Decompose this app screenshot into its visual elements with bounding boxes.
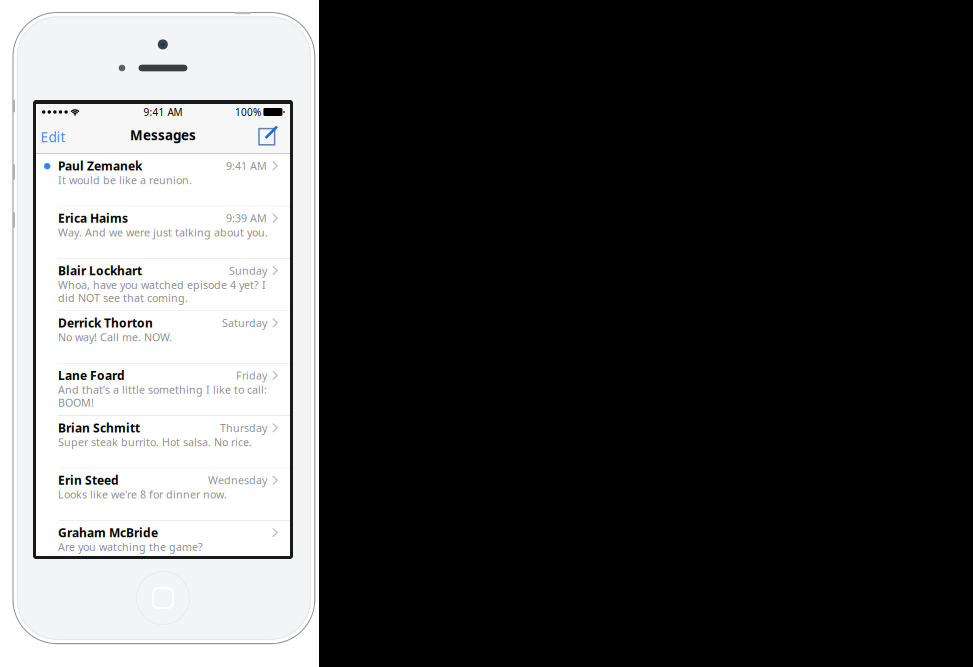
button[interactable]: Derrick Thorton [36, 311, 290, 363]
button[interactable]: Lane Foard [36, 364, 290, 415]
staticText: Messages [130, 126, 196, 144]
staticText: 9:41 AM [143, 105, 182, 119]
staticText: did NOT see that coming. [58, 290, 188, 305]
staticText: Thursday [220, 420, 267, 435]
button[interactable]: Blair Lockhart [36, 259, 290, 311]
button[interactable]: Graham McBride [36, 521, 290, 573]
staticText: And that’s a little something I like to … [58, 382, 267, 397]
staticText: 9:41 AM [226, 158, 267, 173]
staticText: 100% [235, 105, 261, 119]
button[interactable]: Compose [258, 120, 290, 154]
button[interactable]: Paul Zemanek [36, 154, 290, 206]
button[interactable]: Erin Steed [36, 468, 290, 520]
staticText: Friday [236, 368, 267, 383]
staticText: Looks like we're 8 for dinner now. [58, 487, 227, 502]
staticText: Sunday [229, 263, 267, 278]
staticText: Waiting on you. [58, 552, 138, 567]
staticText: It would be like a reunion. [58, 173, 192, 187]
button[interactable]: Edit [36, 121, 80, 153]
staticText: Erica Haims [58, 210, 128, 226]
staticText: Graham McBride [58, 524, 158, 541]
staticText: Derrick Thorton [58, 315, 153, 331]
staticText: Whoa, have you watched episode 4 yet? I [58, 277, 266, 292]
button[interactable]: Erica Haims [36, 206, 290, 258]
staticText: Paul Zemanek [58, 158, 142, 174]
staticText: BOOM! [58, 395, 94, 410]
staticText: Way. And we were just talking about you. [58, 225, 268, 240]
staticText: 9:39 AM [226, 211, 267, 225]
staticText: Are you watching the game? [58, 539, 203, 554]
staticText: Super steak burrito. Hot salsa. No rice. [58, 435, 252, 449]
staticText: Lane Foard [58, 367, 125, 383]
staticText: Wednesday [208, 473, 267, 487]
staticText: Brian Schmitt [58, 420, 140, 436]
staticText: No way! Call me. NOW. [58, 330, 172, 344]
staticText: Blair Lockhart [58, 262, 142, 279]
staticText: Saturday [222, 316, 267, 330]
button[interactable]: Brian Schmitt [36, 416, 290, 468]
staticText: Edit [40, 128, 65, 146]
staticText: Erin Steed [58, 472, 119, 488]
